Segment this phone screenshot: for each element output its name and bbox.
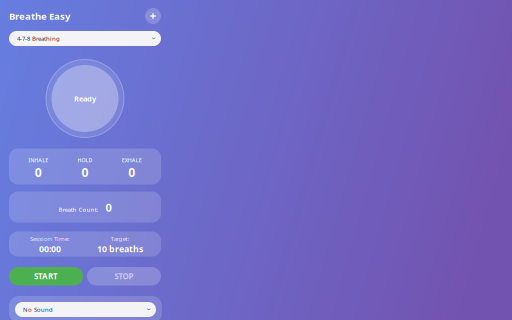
button[interactable]: Add breathing pattern	[145, 8, 161, 24]
button[interactable]: No Sound	[9, 296, 162, 320]
staticText: 0	[81, 164, 88, 180]
staticText: INHALE	[28, 156, 48, 164]
button[interactable]: 4-7-8 Breathing	[9, 31, 161, 46]
staticText: 0	[105, 200, 111, 215]
staticText: HOLD	[77, 156, 92, 164]
button[interactable]: STOP	[87, 267, 161, 285]
staticText: Target:	[110, 234, 129, 243]
staticText: Breath Count:	[58, 205, 98, 214]
staticText: STOP	[114, 271, 133, 282]
staticText: EXHALE	[122, 156, 142, 164]
staticText: 0	[35, 164, 42, 180]
staticText: Breathe Easy	[9, 9, 70, 23]
staticText: Session Time:	[30, 234, 70, 243]
staticText: START	[34, 271, 58, 282]
staticText: Ready	[74, 93, 96, 104]
button[interactable]: START	[9, 267, 83, 285]
staticText: 4-7-8 Breathing	[17, 34, 60, 43]
staticText: 10 breaths	[97, 243, 143, 255]
staticText: No Sound	[23, 305, 53, 314]
staticText: 0	[128, 164, 135, 180]
staticText: 00:00	[39, 243, 61, 255]
